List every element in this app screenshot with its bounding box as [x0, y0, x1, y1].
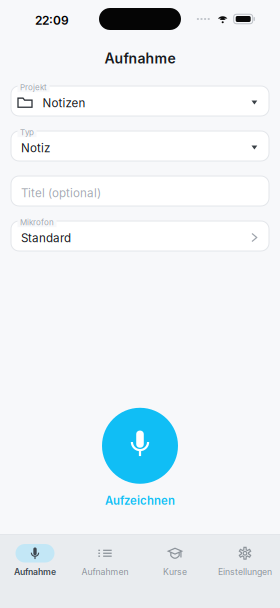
button[interactable]: Aufnahmen — [70, 535, 140, 580]
staticText: Kurse — [163, 566, 187, 577]
staticText: Projekt — [20, 82, 47, 92]
staticText: 22:09 — [35, 13, 69, 28]
button[interactable]: Einstellungen — [210, 535, 280, 580]
staticText: Aufnahmen — [81, 566, 128, 577]
staticText: Standard — [21, 231, 71, 245]
button[interactable]: Aufnahme — [0, 535, 70, 580]
staticText: Titel (optional) — [21, 186, 101, 200]
button[interactable]: Standard — [11, 221, 269, 251]
button[interactable]: Kurse — [140, 535, 210, 580]
staticText: Notizen — [42, 96, 85, 110]
button[interactable]: Aufzeichnen — [105, 484, 175, 507]
staticText: Notiz — [21, 141, 50, 155]
button[interactable]: Aufzeichnen — [102, 408, 178, 484]
staticText: Einstellungen — [218, 566, 272, 577]
button[interactable]: Titel (optional) — [11, 176, 269, 206]
staticText: Aufzeichnen — [105, 494, 175, 507]
button[interactable]: Notizen — [11, 86, 269, 116]
staticText: Aufnahme — [104, 50, 175, 67]
button[interactable]: Notiz — [11, 131, 269, 161]
staticText: Typ — [20, 127, 34, 137]
staticText: Mikrofon — [20, 217, 54, 227]
staticText: Aufnahme — [14, 566, 56, 577]
